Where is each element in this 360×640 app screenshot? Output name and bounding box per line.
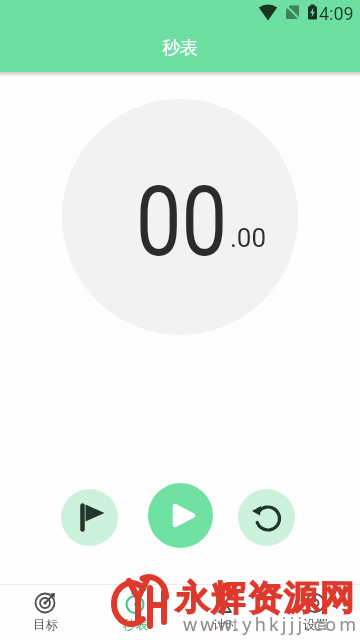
staticText: 秒表 <box>162 37 198 60</box>
staticText: 计时 <box>213 617 238 633</box>
button[interactable]: 目标 <box>0 585 90 640</box>
button[interactable] <box>61 489 118 546</box>
button[interactable]: 计时 <box>180 585 270 640</box>
button[interactable] <box>238 489 295 546</box>
staticText: 目标 <box>33 617 58 633</box>
staticText: 设置 <box>303 617 328 633</box>
staticText: www.yhkjjj.com <box>183 612 360 637</box>
staticText: 00 <box>136 165 228 279</box>
button[interactable] <box>148 483 213 548</box>
button[interactable]: 设置 <box>270 585 360 640</box>
staticText: 4:09 <box>319 3 354 24</box>
button[interactable]: 秒表 <box>90 585 180 640</box>
staticText: 秒表 <box>123 617 148 633</box>
staticText: .00 <box>230 223 267 253</box>
staticText: 永辉资源网 <box>175 577 356 620</box>
